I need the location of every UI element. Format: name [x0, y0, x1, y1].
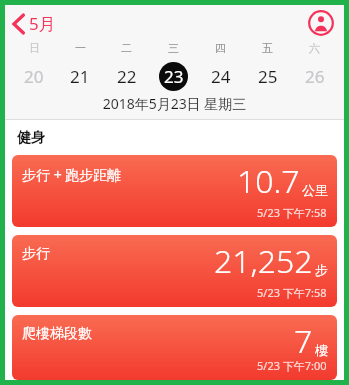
staticText: 健身 — [17, 129, 45, 147]
staticText: 21,252 — [214, 239, 313, 283]
staticText: 四 — [215, 41, 226, 55]
staticText: 23 — [164, 65, 184, 88]
staticText: 步行 — [22, 245, 50, 263]
staticText: 22 — [117, 65, 137, 88]
button[interactable]: Profile — [308, 10, 334, 36]
button[interactable]: 25 — [244, 61, 291, 91]
staticText: 步 — [315, 262, 328, 278]
staticText: 步行 + 跑步距離 — [22, 165, 122, 184]
staticText: 5/23 下午7:58 — [257, 285, 327, 300]
staticText: 21 — [70, 65, 90, 88]
button[interactable]: 步行 — [12, 235, 337, 307]
button[interactable]: 5月 — [5, 8, 64, 39]
button[interactable]: 21 — [57, 61, 103, 91]
staticText: 二 — [121, 41, 132, 55]
staticText: 日 — [29, 41, 40, 55]
button[interactable]: 24 — [197, 61, 244, 91]
staticText: 5/23 下午7:58 — [257, 205, 327, 220]
staticText: 5/23 下午7:00 — [257, 358, 327, 373]
staticText: 爬樓梯段數 — [22, 325, 92, 343]
staticText: 26 — [305, 65, 325, 88]
button[interactable]: 爬樓梯段數 — [12, 315, 337, 380]
button[interactable]: 23 — [150, 61, 197, 91]
staticText: 24 — [211, 65, 231, 88]
button[interactable]: 22 — [103, 61, 150, 91]
staticText: 一 — [75, 41, 86, 55]
staticText: 10.7 — [237, 159, 300, 203]
button[interactable]: 26 — [291, 61, 338, 91]
staticText: 7 — [294, 319, 313, 363]
staticText: 公里 — [302, 182, 328, 198]
staticText: 2018年5月23日 星期三 — [5, 94, 344, 113]
staticText: 六 — [309, 41, 320, 55]
staticText: 20 — [24, 65, 44, 88]
staticText: 25 — [258, 65, 278, 88]
button[interactable]: 20 — [11, 61, 57, 91]
staticText: 5月 — [29, 12, 56, 35]
staticText: 三 — [168, 41, 179, 55]
staticText: 樓 — [315, 342, 328, 358]
button[interactable]: 步行 + 跑步距離 — [12, 155, 337, 227]
staticText: 五 — [262, 41, 273, 55]
